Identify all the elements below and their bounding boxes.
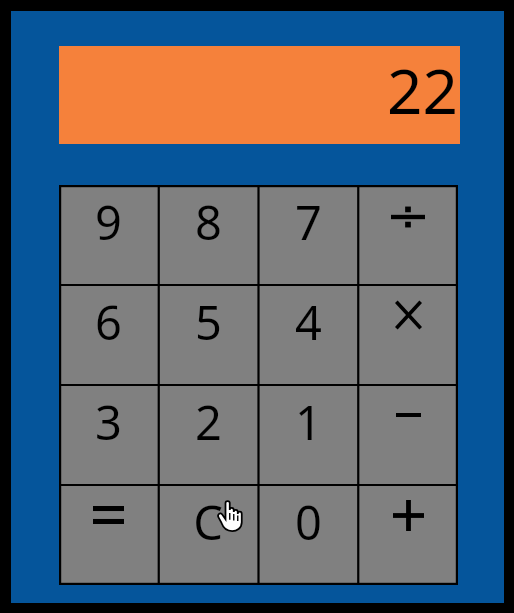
- button[interactable]: 6: [59, 285, 158, 385]
- staticText: 1: [295, 390, 322, 454]
- staticText: C: [193, 490, 223, 554]
- staticText: 5: [195, 290, 222, 354]
- staticText: 7: [295, 190, 322, 254]
- button[interactable]: 4: [258, 285, 358, 385]
- button[interactable]: 8: [158, 185, 258, 285]
- staticText: 22: [387, 48, 458, 132]
- staticText: 0: [295, 490, 322, 554]
- staticText: 8: [195, 190, 222, 254]
- staticText: 4: [295, 290, 322, 354]
- button[interactable]: Subtract: [358, 385, 458, 485]
- button[interactable]: Multiply: [358, 285, 458, 385]
- button[interactable]: Divide: [358, 185, 458, 285]
- button[interactable]: 2: [158, 385, 258, 485]
- button[interactable]: Equals: [59, 485, 158, 585]
- button[interactable]: 22: [59, 46, 460, 144]
- button[interactable]: C: [158, 485, 258, 585]
- staticText: 9: [95, 190, 122, 254]
- button[interactable]: 5: [158, 285, 258, 385]
- button[interactable]: 1: [258, 385, 358, 485]
- button[interactable]: 9: [59, 185, 158, 285]
- button[interactable]: 0: [258, 485, 358, 585]
- staticText: 2: [195, 390, 222, 454]
- staticText: 3: [95, 390, 122, 454]
- button[interactable]: Add: [358, 485, 458, 585]
- button[interactable]: 3: [59, 385, 158, 485]
- button[interactable]: 7: [258, 185, 358, 285]
- staticText: 6: [95, 290, 122, 354]
